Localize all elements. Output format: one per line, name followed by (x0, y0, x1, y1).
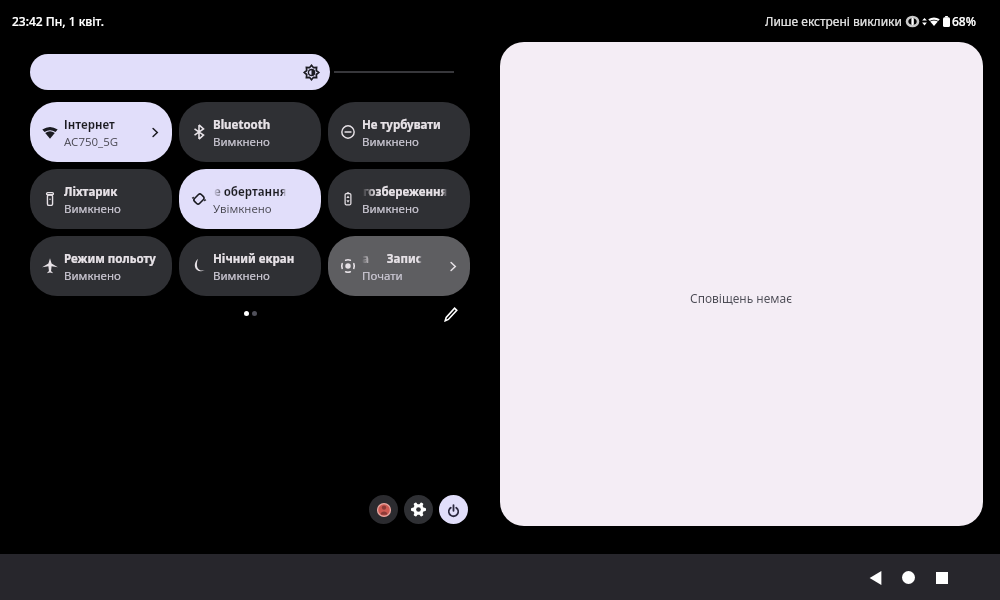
staticText: Не турбувати (362, 117, 441, 133)
staticText: Ліхтарик (64, 184, 118, 200)
button[interactable]: гозбереження (328, 169, 470, 229)
button[interactable]: Settings (404, 495, 433, 524)
button[interactable]: Bluetooth (179, 102, 321, 162)
button[interactable]: Не турбувати (328, 102, 470, 162)
staticText: Вимкнено (64, 201, 121, 216)
staticText: Bluetooth (213, 117, 271, 133)
staticText: 68% (952, 13, 976, 29)
staticText: Нічний екран (213, 251, 295, 267)
staticText: Вимкнено (213, 134, 270, 149)
staticText: е обертання (214, 184, 287, 200)
button[interactable]: Recent apps (925, 561, 958, 594)
button[interactable]: Power (439, 495, 468, 524)
staticText: Режим польоту (64, 251, 156, 267)
staticText: Вимкнено (362, 134, 419, 149)
button[interactable]: Home (892, 561, 925, 594)
button[interactable]: Back (859, 561, 892, 594)
staticText: Увімкнено (213, 201, 272, 216)
button[interactable]: Edit tiles (438, 301, 464, 327)
staticText: Вимкнено (362, 201, 419, 216)
staticText: Сповіщень немає (690, 290, 793, 306)
button[interactable]: е обертання (179, 169, 321, 229)
button[interactable]: Ліхтарик (30, 169, 172, 229)
staticText: Вимкнено (213, 268, 270, 283)
staticText: а Запис (362, 251, 422, 267)
staticText: Вимкнено (64, 268, 121, 283)
button[interactable]: Нічний екран (179, 236, 321, 296)
button[interactable]: а Запис (328, 236, 470, 296)
staticText: AC750_5G (64, 134, 119, 149)
staticText: Інтернет (64, 117, 115, 133)
button[interactable]: Brightness (30, 54, 330, 90)
button[interactable]: Режим польоту (30, 236, 172, 296)
button[interactable]: Сповіщень немає (500, 42, 983, 526)
staticText: 23:42 Пн, 1 квіт. (12, 13, 104, 29)
staticText: Лише екстрені виклики (765, 13, 902, 29)
staticText: гозбереження (363, 184, 448, 200)
staticText: Почати (362, 268, 403, 283)
button[interactable]: Інтернет (30, 102, 172, 162)
button[interactable]: User account (369, 495, 398, 524)
